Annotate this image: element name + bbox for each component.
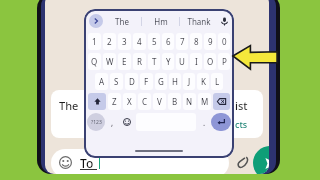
button[interactable]: L [211,73,223,90]
staticText: U [179,56,185,67]
staticText: To [80,155,94,171]
button[interactable]: Voice input [217,12,231,30]
staticText: R [137,56,142,67]
staticText: W [106,56,114,67]
staticText: 6 [166,36,171,47]
button[interactable]: 5 [148,33,160,50]
button[interactable]: D [125,73,138,90]
button[interactable]: H [169,73,181,90]
button[interactable]: G [155,73,167,90]
button[interactable]: Emoji [119,113,135,131]
button[interactable]: Backspace [213,93,230,110]
button[interactable]: O [204,53,216,70]
staticText: N [186,96,193,107]
button[interactable]: K [197,73,209,90]
staticText: I [195,56,198,67]
staticText: T [152,56,157,67]
button[interactable]: Send [253,146,269,174]
staticText: A [99,76,105,87]
staticText: O [207,56,214,67]
button[interactable]: M [198,93,211,110]
button[interactable]: E [118,53,131,70]
staticText: Q [91,56,98,67]
staticText: D [129,76,135,87]
staticText: Y [166,56,171,67]
staticText: 1 [92,36,97,47]
staticText: X [127,96,132,107]
staticText: G [158,76,164,87]
staticText: The [59,98,79,113]
button[interactable]: F [140,73,153,90]
staticText: 2 [107,36,112,47]
staticText: 3 [122,36,127,47]
button[interactable]: B [168,93,181,110]
staticText: 5 [152,36,157,47]
staticText: ?123 [91,119,102,126]
button[interactable]: J [183,73,195,90]
staticText: 9 [208,36,213,47]
button[interactable]: Attach [235,154,251,170]
staticText: C [142,96,148,107]
button[interactable]: P [218,53,230,70]
button[interactable]: 6 [162,33,174,50]
button[interactable]: Q [88,53,101,70]
button[interactable]: Y [162,53,174,70]
staticText: Thank [187,16,211,27]
staticText: 8 [194,36,199,47]
staticText: Z [112,96,117,107]
button[interactable]: Shift [88,93,106,110]
button[interactable]: 0 [218,33,230,50]
button[interactable]: , [105,113,119,131]
staticText: L [215,76,220,87]
staticText: F [144,76,149,87]
button[interactable]: Z [108,93,121,110]
button[interactable]: . [197,113,211,131]
staticText: , [111,117,114,128]
button[interactable]: U [176,53,188,70]
button[interactable]: 2 [103,33,116,50]
button[interactable]: 4 [133,33,146,50]
button[interactable]: W [103,53,116,70]
button[interactable]: I [190,53,202,70]
button[interactable]: V [153,93,166,110]
button[interactable]: 3 [118,33,131,50]
staticText: E [122,56,127,67]
button[interactable]: X [123,93,136,110]
staticText: The [115,16,129,27]
button[interactable]: 8 [190,33,202,50]
staticText: cts [235,118,248,130]
button[interactable]: R [133,53,146,70]
button[interactable]: ?123 [87,113,105,131]
button[interactable]: Enter [211,113,231,131]
button[interactable]: Expand toolbar [89,14,103,28]
button[interactable]: A [95,73,108,90]
button[interactable]: To [51,149,229,174]
staticText: S [114,76,119,87]
button[interactable]: 1 [88,33,101,50]
staticText: 0 [222,36,227,47]
staticText: H [172,76,178,87]
staticText: B [172,96,178,107]
staticText: 7 [180,36,185,47]
button[interactable]: 9 [204,33,216,50]
other: Pointer arrow [232,44,278,70]
button[interactable]: S [110,73,123,90]
staticText: 4 [137,36,142,47]
staticText: . [203,117,206,128]
button[interactable]: 7 [176,33,188,50]
staticText: ist [235,98,248,113]
button[interactable]: N [183,93,196,110]
staticText: Hm [154,16,168,27]
staticText: J [188,76,191,87]
button[interactable]: The [103,12,141,30]
button[interactable]: Hm [142,12,179,30]
staticText: V [157,96,162,107]
staticText: K [201,76,206,87]
button[interactable]: The [51,90,263,138]
staticText: M [201,96,209,107]
button[interactable]: Thank [180,12,217,30]
button[interactable]: C [138,93,151,110]
button[interactable]: T [148,53,160,70]
staticText: P [222,56,227,67]
